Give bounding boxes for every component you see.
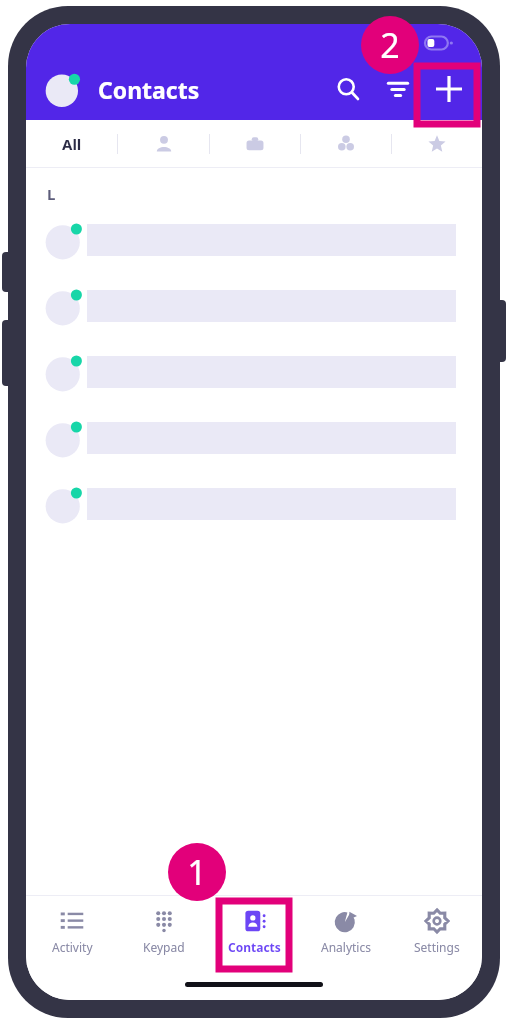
button[interactable]: Favorites [392, 120, 482, 168]
staticText: All [62, 134, 82, 154]
button[interactable]: All [26, 120, 117, 168]
staticText: L [47, 184, 56, 204]
button[interactable]: Add contact [426, 66, 472, 112]
button[interactable]: Activity [26, 896, 118, 968]
button[interactable]: Settings [391, 896, 482, 968]
staticText: 2 [380, 22, 400, 68]
staticText: Keypad [143, 939, 185, 955]
staticText: Contacts [98, 74, 200, 105]
button[interactable] [26, 418, 482, 458]
staticText: Activity [52, 939, 93, 955]
staticText: Contacts [228, 939, 281, 955]
staticText: Analytics [321, 939, 371, 955]
button[interactable]: Personal [118, 120, 209, 168]
button[interactable]: Work [210, 120, 300, 168]
button[interactable]: Filter [376, 67, 420, 111]
button[interactable] [26, 352, 482, 392]
button[interactable]: Contacts [209, 896, 300, 968]
button[interactable]: Keypad [118, 896, 209, 968]
button[interactable] [26, 286, 482, 326]
button[interactable]: Shared [301, 120, 391, 168]
staticText: 1 [187, 849, 207, 895]
button[interactable]: Search [326, 67, 370, 111]
staticText: Settings [414, 939, 460, 955]
button[interactable] [26, 484, 482, 524]
button[interactable] [26, 220, 482, 260]
button[interactable]: Analytics [300, 896, 391, 968]
